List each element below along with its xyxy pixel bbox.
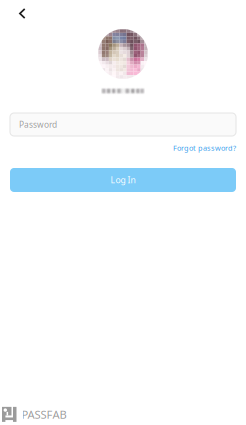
staticText: Forgot password?: [173, 143, 236, 153]
button[interactable]: Log In: [10, 168, 236, 192]
staticText: Log In: [110, 174, 135, 186]
staticText: PASSFAB: [21, 407, 66, 422]
staticText: Password: [19, 119, 57, 130]
button[interactable]: Forgot password?: [173, 143, 236, 153]
button[interactable]: Back: [0, 0, 40, 27]
